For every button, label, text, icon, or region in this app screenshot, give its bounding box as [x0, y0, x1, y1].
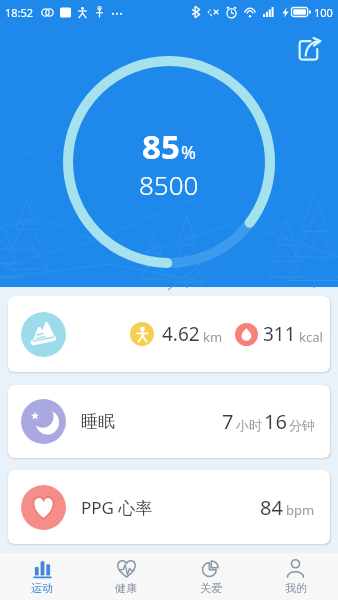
staticText: 睡眠 [81, 411, 115, 432]
staticText: 100 [314, 5, 333, 20]
staticText: 18:52 [5, 5, 34, 20]
staticText: 小时 [236, 417, 262, 433]
button[interactable]: 健康 [84, 553, 168, 600]
button[interactable]: PPG 心率 [8, 470, 330, 544]
staticText: 关爱 [200, 581, 222, 595]
staticText: 4.62 [162, 321, 200, 347]
staticText: 7 [222, 408, 234, 435]
staticText: 运动 [31, 581, 53, 595]
button[interactable]: Share [293, 32, 327, 66]
staticText: bpm [286, 501, 315, 519]
staticText: kcal [299, 328, 323, 346]
staticText: 8500 [139, 167, 199, 202]
staticText: 84 [260, 494, 283, 521]
staticText: % [181, 140, 196, 165]
staticText: km [203, 328, 223, 346]
staticText: 311 [263, 321, 296, 347]
button[interactable]: 4.62 [8, 296, 330, 372]
staticText: PPG 心率 [81, 496, 153, 519]
staticText: 85 [142, 124, 180, 169]
staticText: 分钟 [289, 417, 315, 433]
button[interactable]: 睡眠 [8, 385, 330, 458]
staticText: 16 [264, 408, 287, 435]
staticText: 健康 [115, 581, 137, 595]
button[interactable]: 我的 [253, 553, 338, 600]
button[interactable]: 运动 [0, 553, 84, 600]
staticText: 我的 [285, 581, 307, 595]
button[interactable]: 关爱 [168, 553, 253, 600]
